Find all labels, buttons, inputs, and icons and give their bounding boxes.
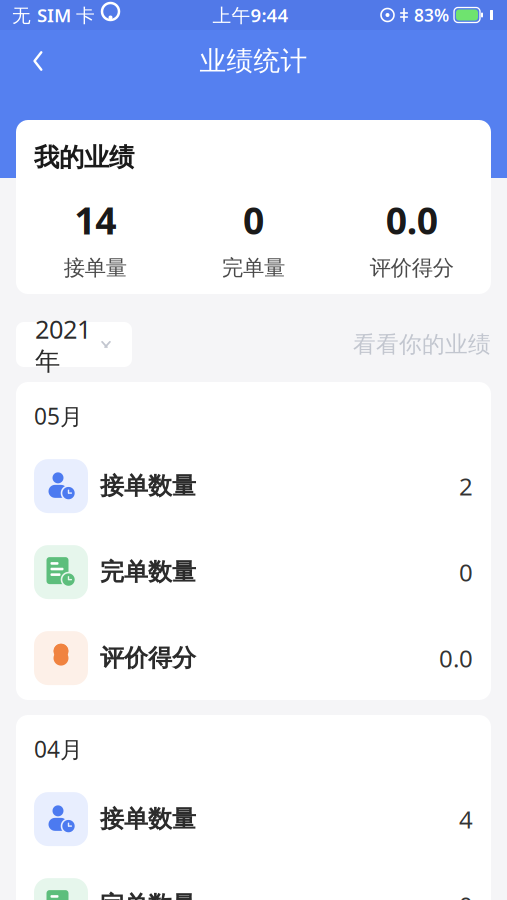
button[interactable]: 2021年	[16, 322, 132, 367]
staticText: 14	[74, 195, 116, 245]
staticText: 我的业绩	[34, 142, 134, 173]
button[interactable]: 接单数量	[16, 776, 491, 862]
staticText: 0.0	[386, 195, 438, 245]
staticText: 接单数量	[100, 471, 196, 501]
button[interactable]: 返回	[16, 39, 60, 83]
staticText: 业绩统计	[199, 45, 307, 77]
staticText: 完单数量	[100, 890, 196, 900]
button[interactable]: 接单数量	[16, 443, 491, 529]
staticText: 4	[459, 803, 473, 835]
button[interactable]: 完单数量	[16, 529, 491, 615]
staticText: 0	[459, 889, 473, 900]
staticText: 2021年	[35, 312, 91, 377]
staticText: 评价得分	[370, 255, 454, 281]
staticText: 0	[459, 556, 473, 588]
staticText: 0	[243, 195, 264, 245]
staticText: 完单量	[222, 255, 285, 281]
button[interactable]: 评价得分	[16, 615, 491, 701]
button[interactable]: 完单数量	[16, 862, 491, 900]
staticText: 完单数量	[100, 557, 196, 587]
staticText: 接单数量	[100, 804, 196, 834]
staticText: 看看你的业绩	[353, 331, 491, 358]
staticText: 评价得分	[100, 643, 196, 673]
staticText: 05月	[34, 401, 83, 431]
staticText: 2	[459, 470, 473, 502]
staticText: 04月	[34, 734, 83, 764]
staticText: 上午9:44	[212, 3, 288, 27]
staticText: 0.0	[439, 642, 473, 674]
staticText: 83%	[414, 3, 449, 26]
staticText: 无 SIM 卡	[12, 3, 95, 27]
staticText: 接单量	[64, 255, 127, 281]
